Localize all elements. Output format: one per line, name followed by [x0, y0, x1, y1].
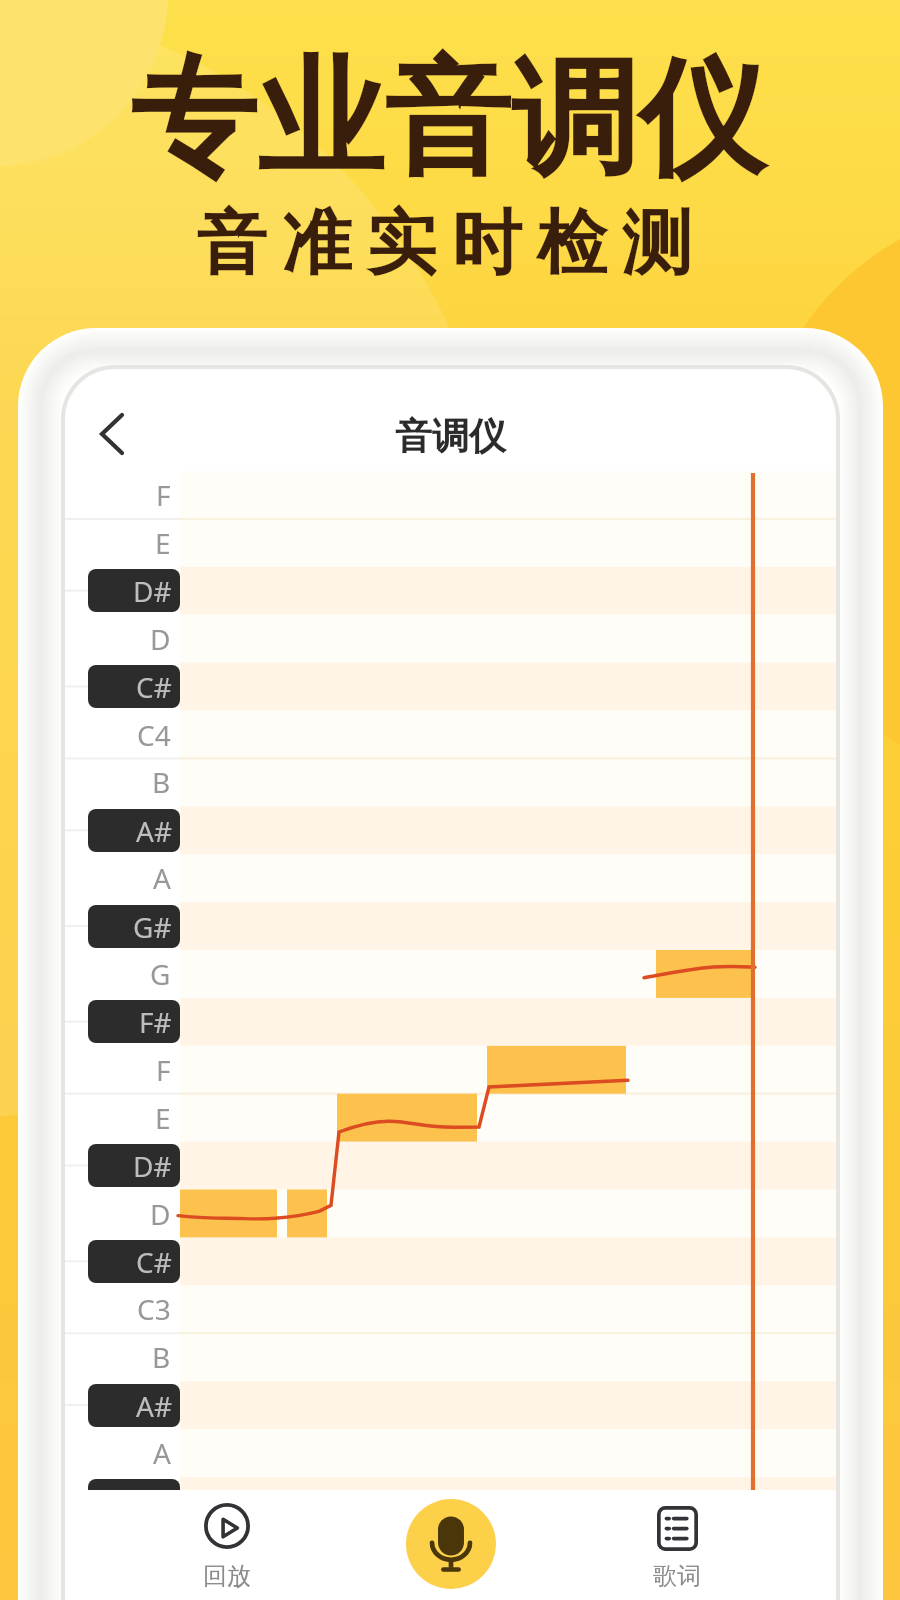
staticText: C# [136, 1243, 172, 1281]
staticText: D# [133, 1147, 172, 1185]
staticText: B [152, 763, 171, 801]
staticText: G# [133, 908, 172, 946]
staticText: E [155, 1099, 171, 1137]
staticText: C# [136, 668, 172, 706]
button[interactable]: C# [88, 665, 180, 708]
staticText: G [150, 955, 171, 993]
staticText: 专业音调仪 [130, 40, 765, 200]
staticText: F [156, 1051, 171, 1089]
staticText: A# [136, 1387, 172, 1425]
staticText: F# [139, 1003, 172, 1041]
button[interactable]: D# [88, 569, 180, 612]
staticText: B [152, 1338, 171, 1376]
staticText: A# [136, 812, 172, 850]
button[interactable]: Back [75, 377, 147, 449]
staticText: 回放 [203, 1561, 251, 1591]
button[interactable]: F# [88, 1000, 180, 1043]
button[interactable]: Record [406, 1499, 496, 1589]
staticText: 音调仪 [395, 413, 506, 460]
staticText: G# [133, 1482, 172, 1520]
staticText: D# [133, 572, 172, 610]
button[interactable]: C# [88, 1240, 180, 1283]
button[interactable]: A# [88, 1384, 180, 1427]
staticText: D [150, 1195, 171, 1233]
staticText: A [153, 1434, 171, 1472]
button[interactable]: 回放 [181, 1495, 273, 1595]
staticText: 歌词 [653, 1561, 701, 1591]
staticText: F [156, 476, 171, 514]
button[interactable]: D# [88, 1144, 180, 1187]
button[interactable]: A# [88, 809, 180, 852]
button[interactable]: G# [88, 1479, 180, 1522]
staticText: E [155, 524, 171, 562]
button[interactable]: G# [88, 905, 180, 948]
staticText: C3 [137, 1290, 171, 1328]
button[interactable]: 歌词 [631, 1495, 723, 1595]
staticText: 音准实时检测 [189, 200, 699, 288]
staticText: D [150, 620, 171, 658]
staticText: C4 [137, 716, 171, 754]
staticText: A [153, 859, 171, 897]
